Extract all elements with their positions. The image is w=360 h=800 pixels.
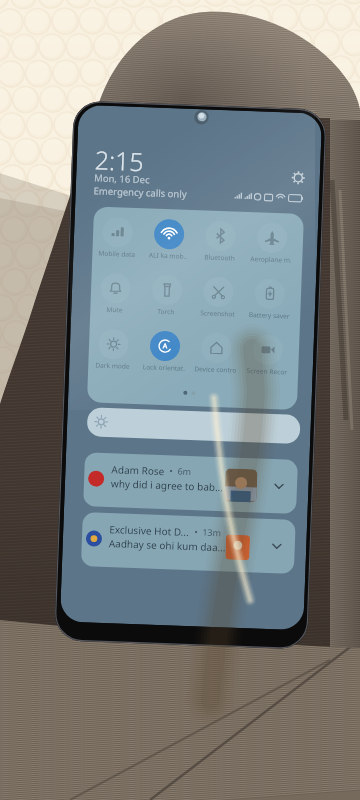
button[interactable] — [0, 0, 360, 800]
